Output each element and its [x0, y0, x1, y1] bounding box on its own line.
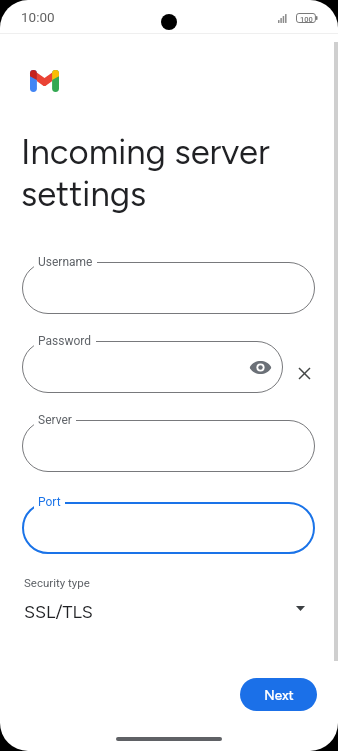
button[interactable]: Show password — [244, 351, 276, 383]
staticText: Port — [38, 495, 61, 509]
button[interactable]: Next — [240, 678, 317, 711]
staticText: Server — [38, 413, 72, 427]
staticText: SSL/TLS — [24, 601, 93, 623]
staticText: Username — [38, 255, 93, 269]
staticText: Security type — [24, 576, 90, 589]
staticText: 10:00 — [21, 9, 55, 25]
button[interactable]: Port — [22, 502, 315, 554]
button[interactable]: Username — [22, 262, 315, 314]
button[interactable]: Clear — [288, 357, 320, 389]
staticText: Password — [38, 334, 92, 348]
button[interactable]: Password — [22, 341, 283, 393]
button[interactable]: Security type — [0, 570, 338, 628]
staticText: Next — [264, 687, 294, 703]
button[interactable]: Server — [22, 420, 315, 472]
staticText: 100 — [300, 15, 313, 24]
staticText: Incoming server settings — [21, 131, 270, 215]
